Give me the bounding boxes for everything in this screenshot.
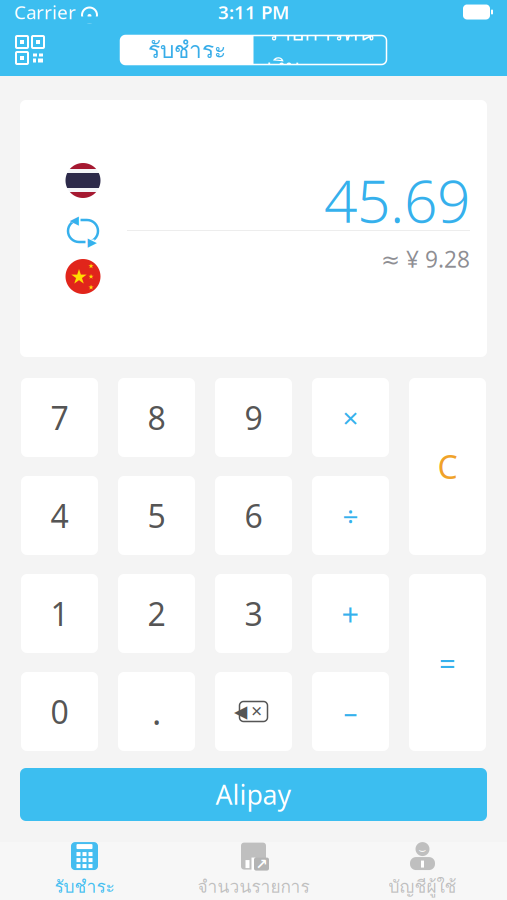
staticText: 7 bbox=[50, 396, 68, 439]
button[interactable]: = bbox=[409, 574, 486, 751]
button[interactable]: C bbox=[409, 378, 486, 555]
staticText: C bbox=[437, 445, 457, 488]
staticText: . bbox=[152, 688, 161, 734]
staticText: = bbox=[439, 643, 456, 682]
staticText: 8 bbox=[147, 396, 165, 439]
button[interactable]: 9 bbox=[215, 378, 292, 457]
staticText: จำนวนรายการ bbox=[197, 873, 309, 900]
button[interactable]: 7 bbox=[21, 378, 98, 457]
staticText: Alipay bbox=[215, 777, 291, 812]
staticText: ◀ bbox=[234, 702, 247, 721]
button[interactable]: 0 bbox=[21, 672, 98, 751]
staticText: รายการคืนเงิน bbox=[266, 15, 373, 85]
button[interactable]: × bbox=[312, 378, 389, 457]
staticText: ★ bbox=[70, 265, 88, 288]
button[interactable]: 4 bbox=[21, 476, 98, 555]
button[interactable]: 2 bbox=[118, 574, 195, 653]
staticText: 0 bbox=[50, 690, 68, 733]
staticText: 3:11 PM bbox=[218, 0, 289, 24]
staticText: ◀ bbox=[69, 213, 78, 227]
staticText: + bbox=[341, 593, 359, 634]
button[interactable]: 8 bbox=[118, 378, 195, 457]
button[interactable]: 3 bbox=[215, 574, 292, 653]
staticText: Carrier bbox=[14, 0, 76, 24]
button[interactable]: Scan QR code bbox=[8, 28, 52, 72]
staticText: 1 bbox=[50, 592, 68, 635]
staticText: ★ bbox=[88, 262, 94, 270]
staticText: 6 bbox=[244, 494, 262, 537]
button[interactable]: ÷ bbox=[312, 476, 389, 555]
staticText: 4 bbox=[50, 494, 68, 537]
staticText: ≈ ¥ 9.28 bbox=[381, 244, 470, 274]
staticText: 9 bbox=[244, 396, 262, 439]
staticText: ⌣ bbox=[418, 844, 426, 856]
staticText: รับชำระ bbox=[54, 873, 114, 900]
staticText: – bbox=[343, 693, 357, 730]
staticText: บัญชีผู้ใช้ bbox=[388, 873, 456, 900]
button[interactable]: 1 bbox=[21, 574, 98, 653]
button[interactable]: ↗ bbox=[169, 842, 338, 900]
staticText: ÷ bbox=[342, 497, 358, 534]
staticText: ↗ bbox=[255, 856, 267, 872]
button[interactable]: รับชำระ bbox=[120, 35, 253, 64]
staticText: 2 bbox=[147, 592, 165, 635]
staticText: ★ bbox=[88, 273, 94, 280]
button[interactable]: Swap currencies bbox=[66, 216, 100, 246]
button[interactable]: + bbox=[312, 574, 389, 653]
button[interactable]: 5 bbox=[118, 476, 195, 555]
button[interactable]: รับชำระ bbox=[0, 842, 169, 900]
staticText: 45.69 bbox=[324, 161, 470, 239]
staticText: รับชำระ bbox=[148, 32, 226, 67]
button[interactable]: . bbox=[118, 672, 195, 751]
button[interactable]: – bbox=[312, 672, 389, 751]
button[interactable]: Delete bbox=[215, 672, 292, 751]
staticText: 5 bbox=[147, 494, 165, 537]
staticText: ▶ bbox=[87, 235, 96, 249]
button[interactable]: รายการคืนเงิน bbox=[253, 35, 386, 64]
staticText: ★ bbox=[88, 283, 94, 291]
staticText: ✕ bbox=[250, 703, 262, 720]
button[interactable]: Alipay bbox=[20, 768, 487, 821]
staticText: 3 bbox=[244, 592, 262, 635]
button[interactable]: 6 bbox=[215, 476, 292, 555]
staticText: × bbox=[342, 399, 358, 436]
button[interactable]: ⌣ bbox=[338, 842, 507, 900]
